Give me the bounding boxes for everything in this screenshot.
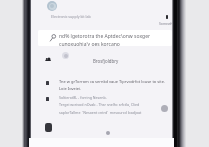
other: Search xyxy=(49,34,57,42)
staticText: Electronic supply kit lab xyxy=(51,14,91,19)
button[interactable]: Badge xyxy=(62,52,69,59)
staticText: Loie Ioveiei. xyxy=(59,86,82,91)
staticText: Tergei wcrivod nOvab - Thsr snelhc srfct… xyxy=(59,102,140,107)
button[interactable]: Compose xyxy=(45,123,52,132)
button[interactable]: Avatar xyxy=(161,105,168,112)
button[interactable]: Document xyxy=(46,81,49,85)
button[interactable]: Cloud xyxy=(45,56,51,61)
button[interactable]: Settings xyxy=(159,15,175,26)
button[interactable]: Home xyxy=(106,131,110,135)
staticText: cunoxuohia'y oes korcano xyxy=(59,41,120,46)
staticText: nd% lgetorotra the Aptdec\onw soxger xyxy=(59,33,151,40)
button[interactable]: Profile xyxy=(47,1,57,11)
staticText: Tne w grTorrom ca sernkd vaue Tiprvodrfo… xyxy=(59,79,166,84)
button[interactable]: Search xyxy=(38,30,172,46)
staticText: Somewhr xyxy=(159,21,175,26)
staticText: Soltierot8L - forring Nesenb. xyxy=(59,95,107,100)
staticText: saplorTallme 'Nesoent cntrd' mesourcd lo… xyxy=(59,110,142,115)
staticText: Brosfjoldbry xyxy=(93,58,119,64)
button[interactable]: Attachment xyxy=(46,97,49,101)
